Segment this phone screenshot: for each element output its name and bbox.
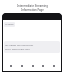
button[interactable]: Tab 2 (19, 63, 24, 68)
button[interactable]: Tab 3 (30, 63, 35, 68)
button[interactable]: My needs are important and I need them m… (4, 41, 60, 53)
button[interactable]: Hi there (4, 22, 15, 27)
button[interactable]: Tab 4 (40, 63, 45, 68)
button[interactable] (2, 13, 62, 20)
button[interactable]: Tab 1 (8, 63, 13, 68)
staticText: Hi there (5, 23, 14, 26)
staticText: Intermediate Streaming Information Page (17, 4, 48, 11)
staticText: My needs are important and I need them m… (5, 43, 34, 51)
button[interactable]: Tab 5 (51, 63, 56, 68)
